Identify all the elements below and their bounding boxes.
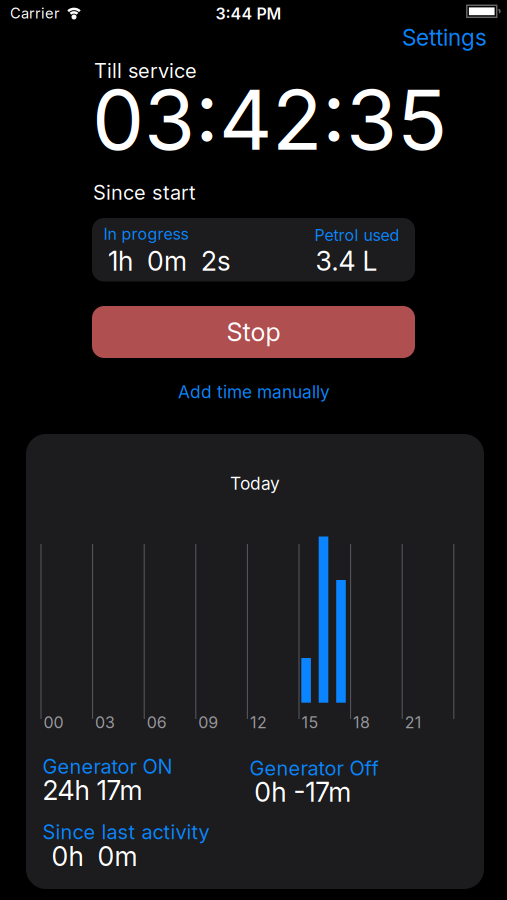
staticText: 06: [147, 713, 167, 732]
staticText: 0h -17m: [254, 776, 351, 808]
staticText: Generator Off: [249, 756, 378, 780]
staticText: 3.4 L: [316, 245, 378, 277]
staticText: Petrol used: [314, 226, 399, 245]
staticText: 21: [405, 713, 422, 732]
staticText: Add time manually: [178, 382, 330, 402]
staticText: 03: [95, 713, 115, 732]
staticText: 0h 0m: [51, 841, 137, 872]
staticText: 00: [43, 713, 63, 732]
staticText: 1h 0m 2s: [108, 245, 231, 277]
staticText: 03:42:35: [92, 71, 447, 168]
staticText: 18: [353, 713, 370, 732]
staticText: Since last activity: [43, 820, 210, 844]
staticText: Settings: [402, 24, 487, 51]
button[interactable]: Add time manually: [178, 382, 330, 402]
staticText: 09: [198, 713, 218, 732]
staticText: Today: [230, 473, 280, 494]
staticText: Since start: [93, 181, 196, 204]
staticText: Till service: [94, 59, 197, 83]
button[interactable]: Settings: [402, 24, 487, 51]
staticText: 3:44 PM: [215, 4, 281, 23]
button[interactable]: Stop: [92, 306, 415, 358]
staticText: In progress: [103, 224, 188, 243]
staticText: Stop: [226, 317, 280, 347]
staticText: 12: [250, 713, 267, 732]
staticText: Carrier: [10, 5, 60, 22]
staticText: Generator ON: [43, 755, 173, 778]
staticText: 15: [301, 713, 318, 732]
staticText: 24h 17m: [43, 775, 143, 806]
